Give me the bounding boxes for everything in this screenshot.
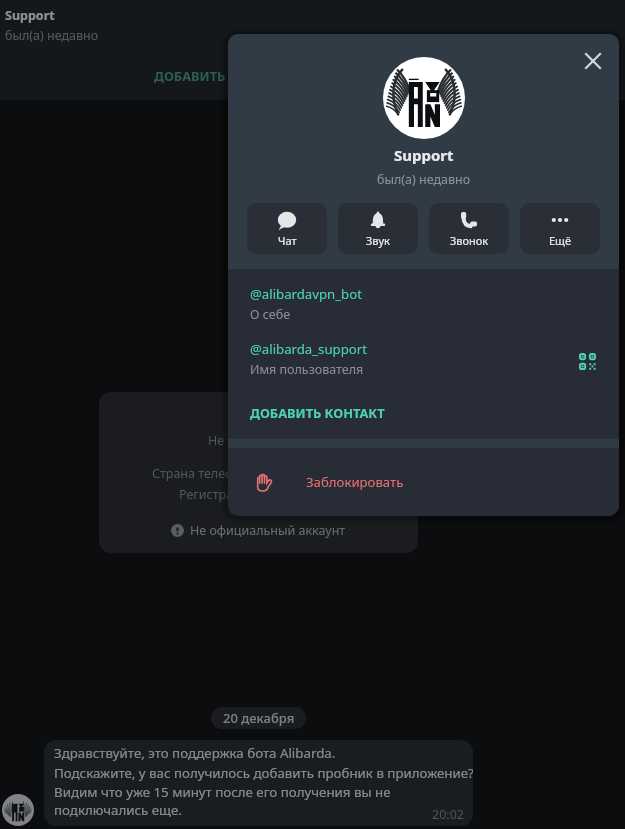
button[interactable]: Close — [577, 45, 608, 76]
staticText: Заблокировать — [306, 473, 404, 491]
button[interactable]: Заблокировать — [228, 448, 619, 516]
staticText: @alibarda_support — [250, 340, 367, 358]
staticText: Звук — [366, 233, 390, 248]
button[interactable]: ДОБАВИТЬ — [154, 67, 226, 84]
staticText: Support — [5, 7, 55, 24]
button[interactable]: QR code — [574, 348, 600, 374]
staticText: 20 декабря — [223, 709, 295, 727]
staticText: Регистрация: ноябрь 2024 — [179, 486, 339, 503]
staticText: Видим что уже 15 минут после его получен… — [54, 783, 391, 801]
staticText: Имя пользователя — [250, 361, 364, 378]
staticText: Не официальный аккаунт — [190, 522, 346, 539]
staticText: Чат — [278, 233, 297, 248]
button[interactable]: ДОБАВИТЬ КОНТАКТ — [228, 386, 619, 439]
staticText: Ещё — [549, 233, 572, 248]
staticText: Страна телефона: Великобритания — [152, 465, 366, 482]
button[interactable]: Чат — [247, 203, 327, 254]
staticText: @alibardavpn_bot — [250, 285, 362, 303]
staticText: Не подтвержден — [208, 432, 309, 449]
staticText: 20:02 — [432, 806, 464, 823]
staticText: Support — [394, 145, 454, 165]
staticText: Звонок — [450, 233, 489, 248]
staticText: О себе — [250, 306, 291, 323]
staticText: был(а) недавно — [377, 171, 471, 188]
staticText: Здравствуйте, это поддержка бота Alibard… — [54, 744, 336, 762]
staticText: Подскажите, у вас получилось добавить пр… — [54, 764, 473, 782]
button[interactable]: Ещё — [520, 203, 600, 254]
staticText: ДОБАВИТЬ КОНТАКТ — [250, 404, 385, 421]
button[interactable]: @alibardavpn_bot — [228, 269, 619, 331]
button[interactable]: @alibarda_support — [228, 331, 619, 386]
staticText: был(а) недавно — [5, 27, 99, 44]
button[interactable]: Звонок — [429, 203, 509, 254]
staticText: подключались еще. — [54, 801, 182, 819]
staticText: ДОБАВИТЬ — [154, 67, 226, 84]
button[interactable]: Звук — [338, 203, 418, 254]
